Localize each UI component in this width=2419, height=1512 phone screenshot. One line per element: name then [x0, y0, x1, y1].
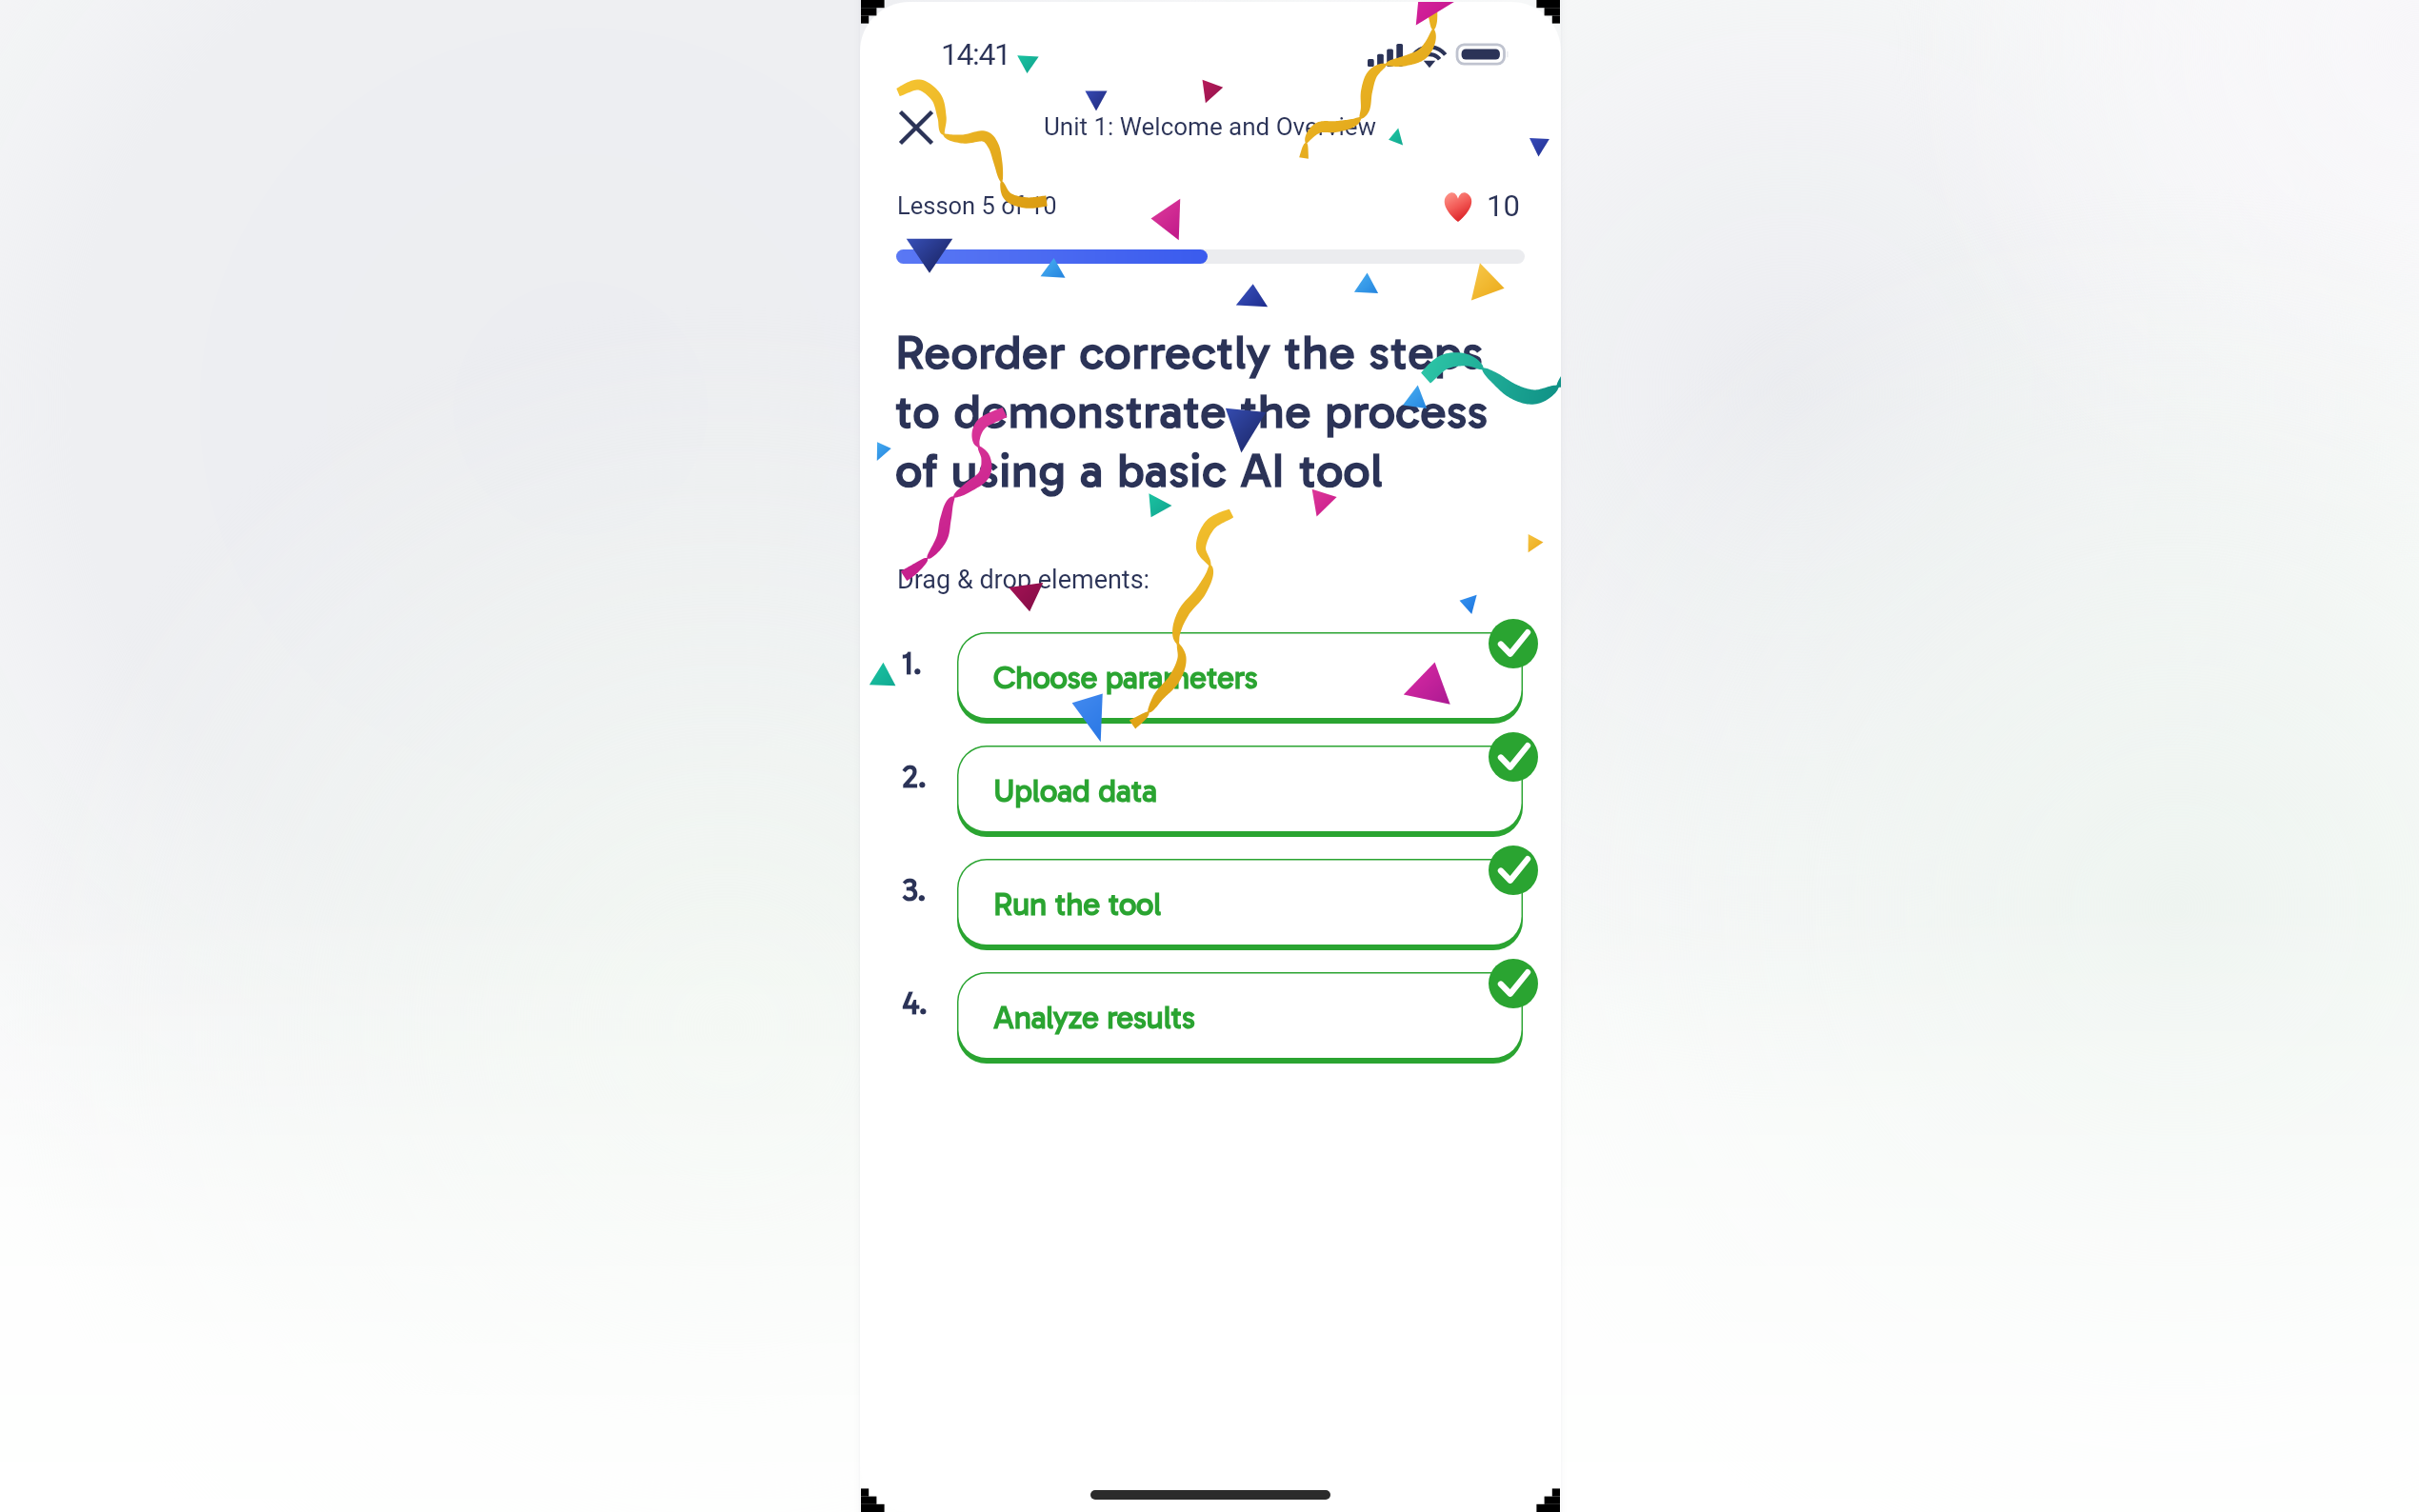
staticText: Analyze results [993, 999, 1195, 1037]
staticText: 3. [902, 870, 927, 909]
staticText: 1. [902, 644, 922, 683]
staticText: 14:41 [941, 36, 1010, 72]
button[interactable]: Close [887, 98, 946, 157]
staticText: 10 [1487, 189, 1520, 223]
staticText: Unit 1: Welcome and Overview [1044, 112, 1377, 141]
staticText: Choose parameters [993, 659, 1258, 697]
button[interactable]: Choose parameters [957, 632, 1523, 724]
button[interactable]: Correct [1489, 959, 1538, 1008]
button[interactable]: Upload data [957, 746, 1523, 837]
staticText: Reorder correctly the steps to demonstra… [895, 324, 1505, 499]
button[interactable]: Correct [1489, 619, 1538, 668]
staticText: Upload data [993, 772, 1158, 810]
button[interactable]: Correct [1489, 732, 1538, 782]
button[interactable]: Correct [1489, 846, 1538, 895]
staticText: Drag & drop elements: [897, 565, 1150, 595]
button[interactable]: Analyze results [957, 972, 1523, 1064]
staticText: Run the tool [993, 885, 1162, 924]
staticText: Lesson 5 of 10 [897, 191, 1057, 220]
staticText: 2. [902, 757, 928, 796]
staticText: 4. [902, 984, 928, 1023]
button[interactable]: Run the tool [957, 859, 1523, 950]
